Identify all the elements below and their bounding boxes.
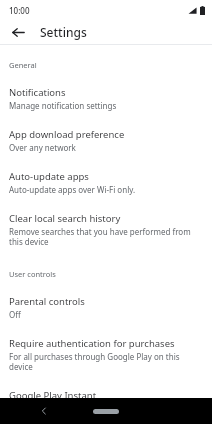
staticText: Notifications xyxy=(9,86,66,99)
button[interactable]: Auto-update apps xyxy=(0,153,212,195)
button[interactable]: Notifications xyxy=(0,70,212,111)
staticText: Parental controls xyxy=(9,295,85,308)
staticText: Manage notification settings xyxy=(9,100,117,111)
staticText: 10:00 xyxy=(9,5,30,16)
staticText: For all purchases through Google Play on… xyxy=(9,351,203,372)
staticText: Auto-update apps xyxy=(9,170,89,183)
button[interactable]: Parental controls xyxy=(0,279,212,320)
staticText: Clear local search history xyxy=(9,212,121,225)
button[interactable]: Back xyxy=(6,20,30,44)
button[interactable]: Back xyxy=(36,403,52,419)
staticText: Remove searches that you have performed … xyxy=(9,226,203,247)
staticText: Auto-update apps over Wi-Fi only. xyxy=(9,184,136,195)
staticText: General xyxy=(9,60,203,70)
button[interactable]: Home xyxy=(86,403,126,419)
button[interactable]: Clear local search history xyxy=(0,195,212,247)
button[interactable]: Google Play Instant xyxy=(0,372,212,398)
staticText: Google Play Instant xyxy=(9,389,97,398)
staticText: Off xyxy=(9,309,21,320)
staticText: Over any network xyxy=(9,142,76,153)
staticText: Require authentication for purchases xyxy=(9,337,175,350)
staticText: App download preference xyxy=(9,128,125,141)
staticText: User controls xyxy=(9,269,203,279)
staticText: Settings xyxy=(40,24,87,40)
button[interactable]: App download preference xyxy=(0,111,212,153)
button[interactable]: Require authentication for purchases xyxy=(0,320,212,372)
